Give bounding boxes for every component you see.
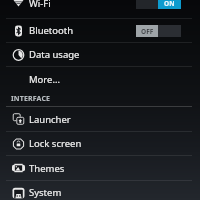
staticText: Wi-Fi — [29, 0, 51, 10]
button[interactable]: Lock screen — [0, 132, 200, 155]
other: Bluetooth — [12, 25, 25, 37]
button[interactable]: System — [0, 181, 200, 200]
staticText: Themes — [29, 162, 65, 175]
staticText: More… — [29, 73, 60, 86]
staticText: INTERFACE — [11, 94, 51, 104]
button[interactable]: Launcher — [0, 107, 200, 131]
button[interactable]: Bluetooth — [0, 19, 200, 42]
staticText: Lock screen — [29, 137, 82, 150]
other: Themes — [12, 162, 25, 174]
staticText: Launcher — [29, 113, 71, 126]
staticText: Bluetooth — [29, 24, 74, 37]
other: System — [12, 187, 25, 199]
button[interactable]: More… — [0, 67, 200, 91]
button[interactable]: Data usage — [0, 43, 200, 66]
other: Data usage — [12, 49, 25, 61]
other: Launcher — [12, 113, 25, 125]
staticText: Data usage — [29, 48, 80, 61]
button[interactable]: Wi-Fi — [0, 0, 200, 18]
other: Wi-Fi — [12, 0, 25, 9]
other: Lock screen — [12, 138, 25, 150]
staticText: ON — [164, 0, 175, 8]
button[interactable]: Themes — [0, 156, 200, 180]
staticText: OFF — [141, 27, 154, 36]
staticText: System — [29, 186, 62, 199]
